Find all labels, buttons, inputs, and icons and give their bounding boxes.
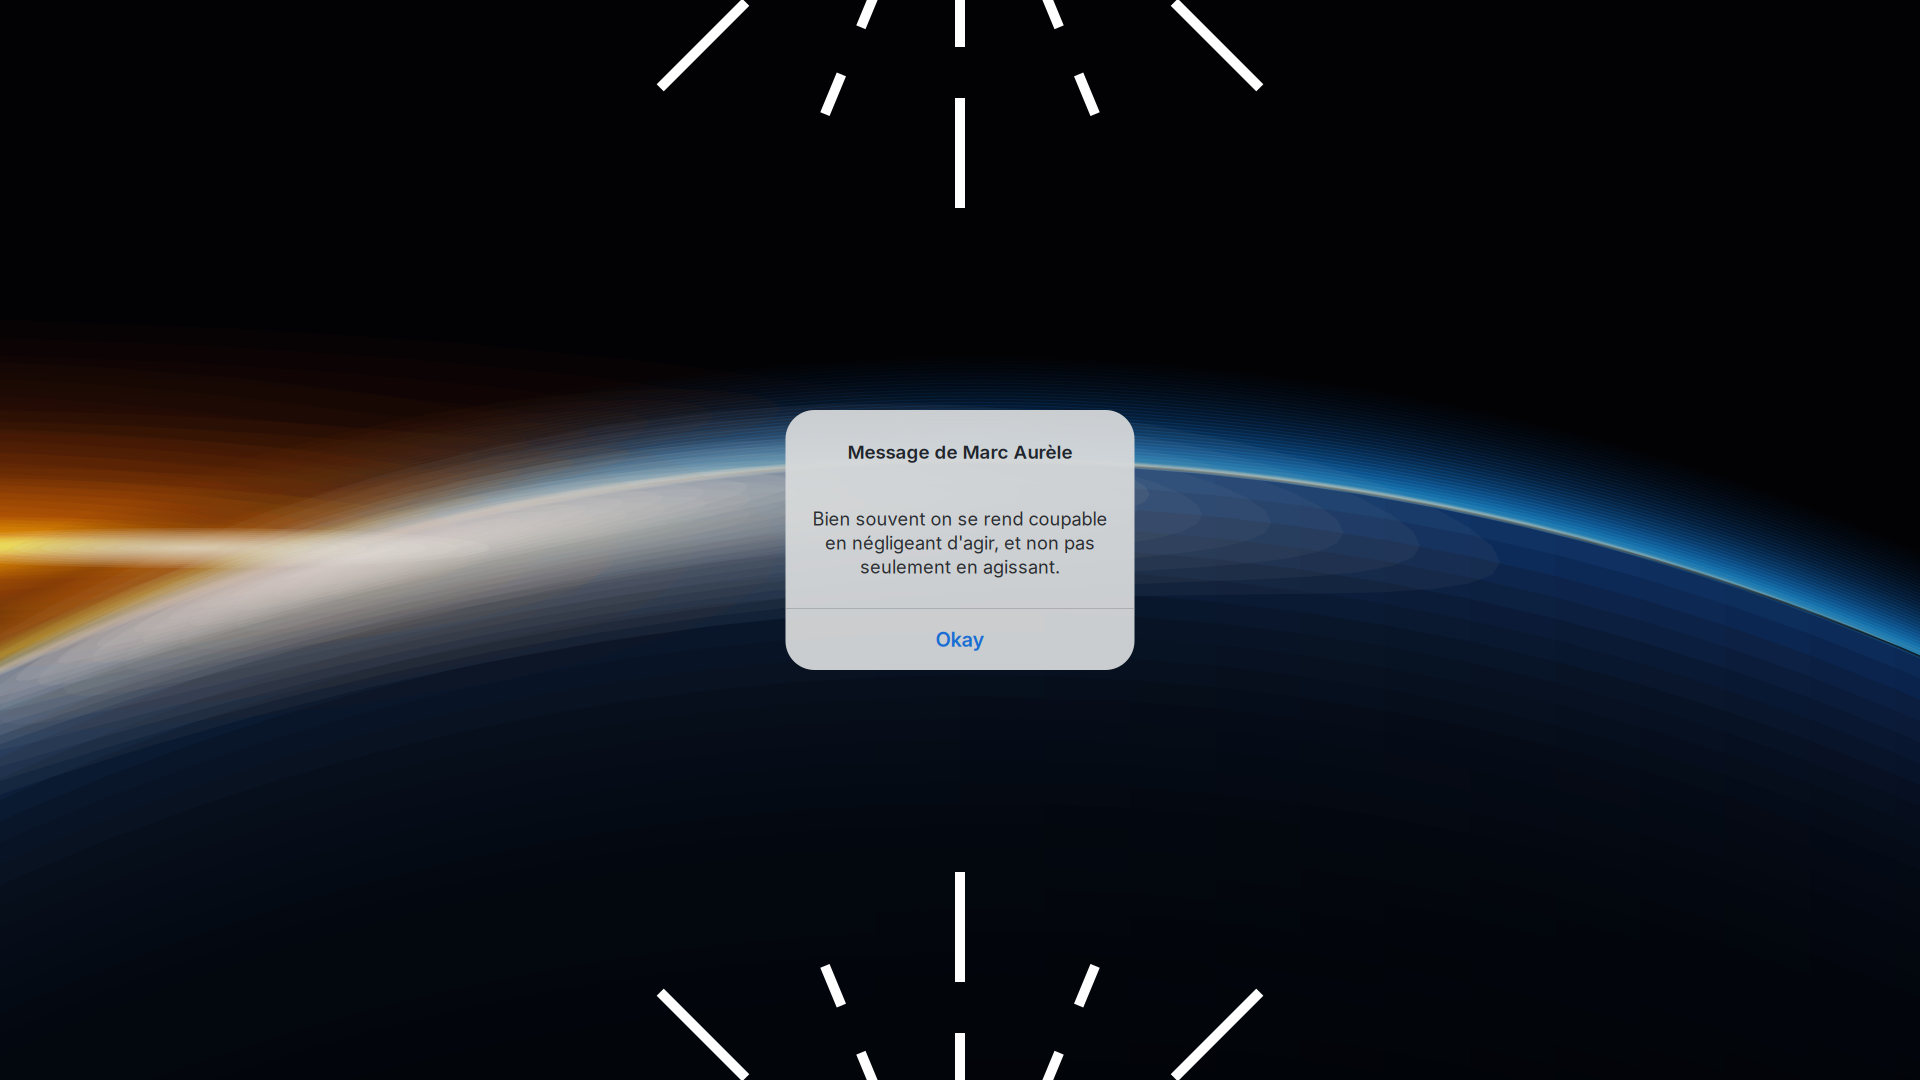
staticText: en négligeant d'agir, et non pas	[825, 532, 1095, 554]
button[interactable]: Okay	[785, 609, 1134, 670]
staticText: Message de Marc Aurèle	[847, 441, 1072, 463]
staticText: seulement en agissant.	[860, 556, 1060, 578]
staticText: Okay	[935, 627, 984, 652]
staticText: Bien souvent on se rend coupable	[812, 508, 1107, 530]
